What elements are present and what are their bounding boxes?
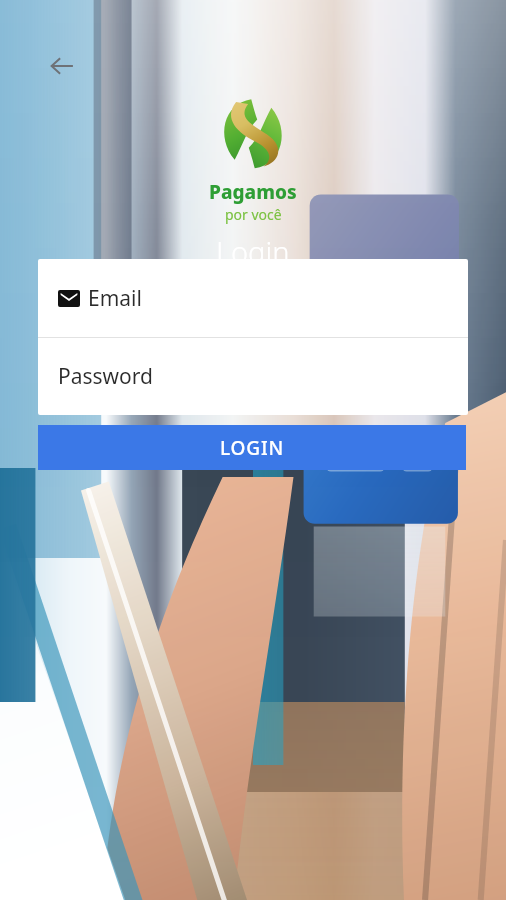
staticText: por você <box>225 205 282 224</box>
staticText: Login <box>216 232 290 271</box>
button[interactable]: Password <box>38 338 468 415</box>
staticText: Email <box>88 284 142 313</box>
staticText: LOGIN <box>220 435 284 461</box>
staticText: Password <box>58 362 153 391</box>
button[interactable]: Email <box>38 259 468 337</box>
button[interactable]: Back <box>40 44 84 88</box>
button[interactable]: LOGIN <box>38 425 466 470</box>
staticText: Pagamos <box>209 179 297 205</box>
